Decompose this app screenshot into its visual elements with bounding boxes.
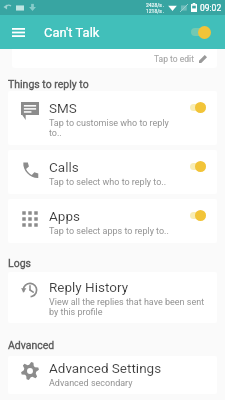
button[interactable]: Toggle SMS [189, 99, 213, 115]
button[interactable]: Reply History [8, 272, 217, 323]
button[interactable]: Advanced Settings [8, 356, 217, 394]
staticText: Reply History [49, 279, 129, 295]
staticText: Tap to select apps to reply to.. [49, 226, 169, 237]
button[interactable]: Apps [8, 199, 217, 243]
staticText: Advanced secondary [49, 378, 133, 389]
button[interactable]: Calls [8, 150, 217, 194]
button[interactable]: SMS [8, 91, 217, 145]
button[interactable]: Toggle Apps [189, 207, 213, 223]
button[interactable]: Menu [0, 15, 36, 49]
staticText: Tap to select who to reply to.. [49, 177, 167, 188]
staticText: Things to reply to [8, 78, 89, 90]
staticText: Apps [49, 208, 80, 224]
staticText: Logs [8, 257, 31, 269]
button[interactable]: Enable profile [190, 20, 216, 44]
staticText: View all the replies that have been sent… [49, 297, 213, 317]
staticText: Advanced Settings [49, 360, 162, 376]
staticText: Tap to customise who to reply to.. [49, 118, 176, 138]
staticText: SMS [49, 100, 77, 116]
staticText: 1218/s . [146, 8, 165, 14]
staticText: 2428/s . [146, 2, 165, 8]
staticText: Can't Talk [44, 25, 100, 40]
button[interactable]: Tap to edit [12, 49, 217, 68]
staticText: Calls [49, 159, 79, 175]
staticText: Tap to edit [154, 54, 194, 64]
staticText: 09:02 [200, 3, 222, 13]
staticText: Advanced [8, 339, 55, 351]
button[interactable]: Toggle Calls [189, 158, 213, 174]
